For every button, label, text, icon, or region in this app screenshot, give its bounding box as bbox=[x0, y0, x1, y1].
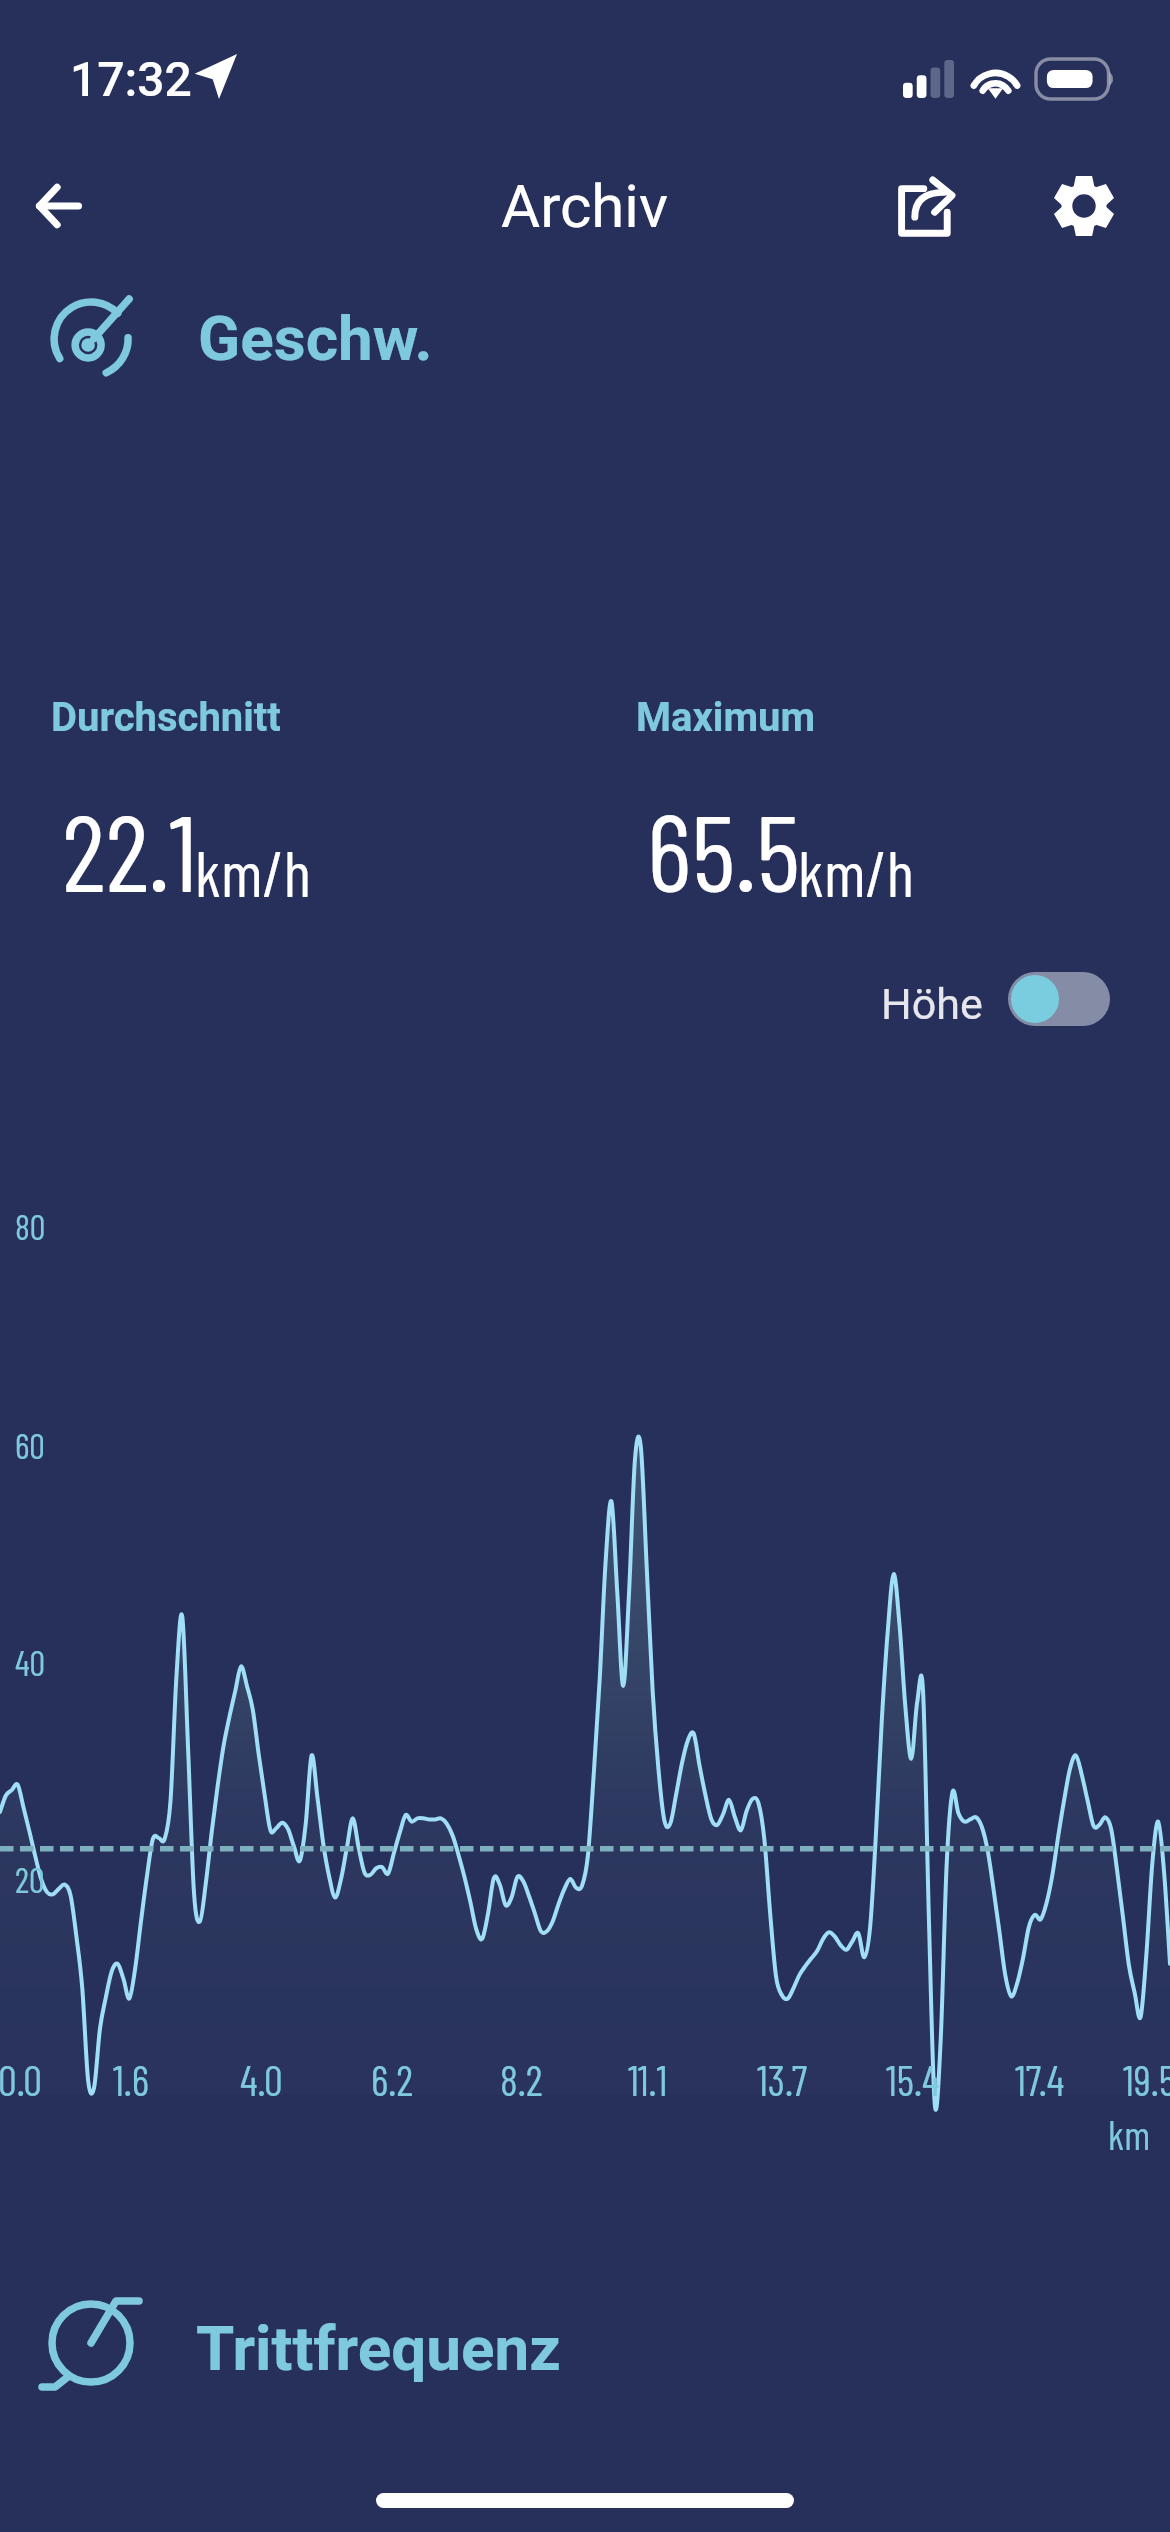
staticText: Durchschnitt bbox=[51, 694, 281, 741]
button[interactable]: Geschw. bbox=[0, 280, 1170, 385]
staticText: km/h bbox=[195, 833, 311, 910]
staticText: 22.1 bbox=[62, 784, 198, 914]
button[interactable]: Settings bbox=[1009, 136, 1159, 276]
staticText: 60 bbox=[15, 1424, 45, 1466]
button[interactable]: Share bbox=[850, 136, 1000, 276]
staticText: 0.0 bbox=[0, 2054, 42, 2104]
staticText: 13.7 bbox=[757, 2054, 808, 2104]
staticText: Trittfrequenz bbox=[196, 2312, 561, 2385]
staticText: 65.5 bbox=[647, 784, 801, 914]
staticText: 20 bbox=[15, 1858, 45, 1900]
button[interactable]: Back bbox=[0, 136, 134, 276]
staticText: Höhe bbox=[881, 979, 983, 1029]
staticText: 17:32 bbox=[70, 51, 192, 107]
button[interactable]: Trittfrequenz bbox=[0, 2272, 1170, 2384]
staticText: 4.0 bbox=[240, 2054, 283, 2104]
staticText: 17.4 bbox=[1015, 2054, 1065, 2104]
staticText: 80 bbox=[15, 1205, 46, 1247]
staticText: Archiv bbox=[501, 171, 669, 241]
button[interactable]: Höhe bbox=[881, 972, 1110, 1026]
staticText: 1.6 bbox=[113, 2054, 149, 2104]
staticText: 19.5 bbox=[1123, 2054, 1170, 2104]
staticText: Maximum bbox=[636, 694, 816, 741]
staticText: km/h bbox=[798, 833, 914, 910]
staticText: 15.4 bbox=[886, 2054, 940, 2104]
staticText: 11.1 bbox=[628, 2054, 668, 2104]
staticText: Geschw. bbox=[198, 302, 433, 375]
staticText: 40 bbox=[15, 1641, 46, 1683]
staticText: km bbox=[1108, 2110, 1151, 2158]
staticText: 8.2 bbox=[500, 2054, 543, 2104]
staticText: 6.2 bbox=[371, 2054, 414, 2104]
